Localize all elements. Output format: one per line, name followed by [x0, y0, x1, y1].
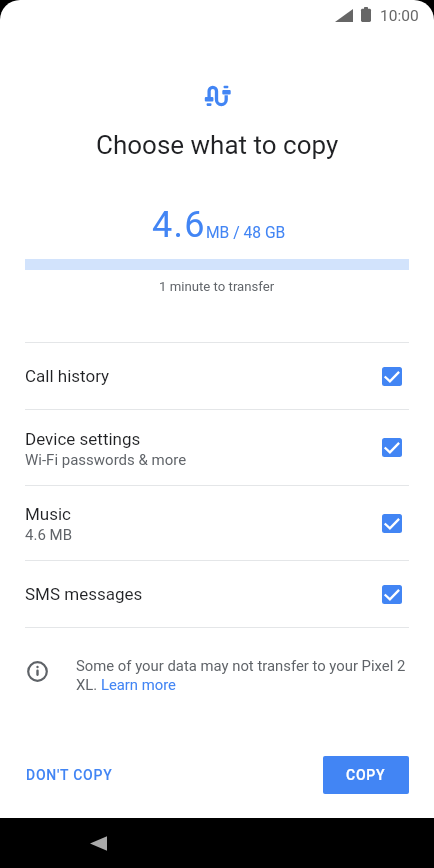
button[interactable]: Back [74, 819, 122, 867]
button[interactable]: DON'T COPY [11, 758, 128, 792]
staticText: Some of your data may not transfer to yo… [76, 657, 414, 693]
staticText: MB / 48 GB [206, 224, 286, 242]
button[interactable]: Music [0, 486, 434, 560]
button[interactable]: Call history [0, 343, 434, 409]
staticText: 1 minute to transfer [159, 279, 275, 294]
staticText: 10:00 [380, 7, 419, 25]
button[interactable]: COPY [323, 756, 409, 794]
staticText: Call history [25, 366, 110, 386]
staticText: COPY [346, 767, 386, 783]
staticText: Choose what to copy [96, 130, 339, 160]
staticText: 4.6 [152, 204, 206, 246]
staticText: Music [25, 504, 72, 524]
staticText: SMS messages [25, 584, 143, 604]
button[interactable]: SMS messages [0, 561, 434, 627]
staticText: Device settings [25, 429, 141, 449]
button[interactable]: Device settings [0, 410, 434, 485]
staticText: 4.6 MB [25, 526, 72, 544]
staticText: DON'T COPY [26, 767, 113, 783]
staticText: Wi-Fi passwords & more [25, 451, 187, 469]
